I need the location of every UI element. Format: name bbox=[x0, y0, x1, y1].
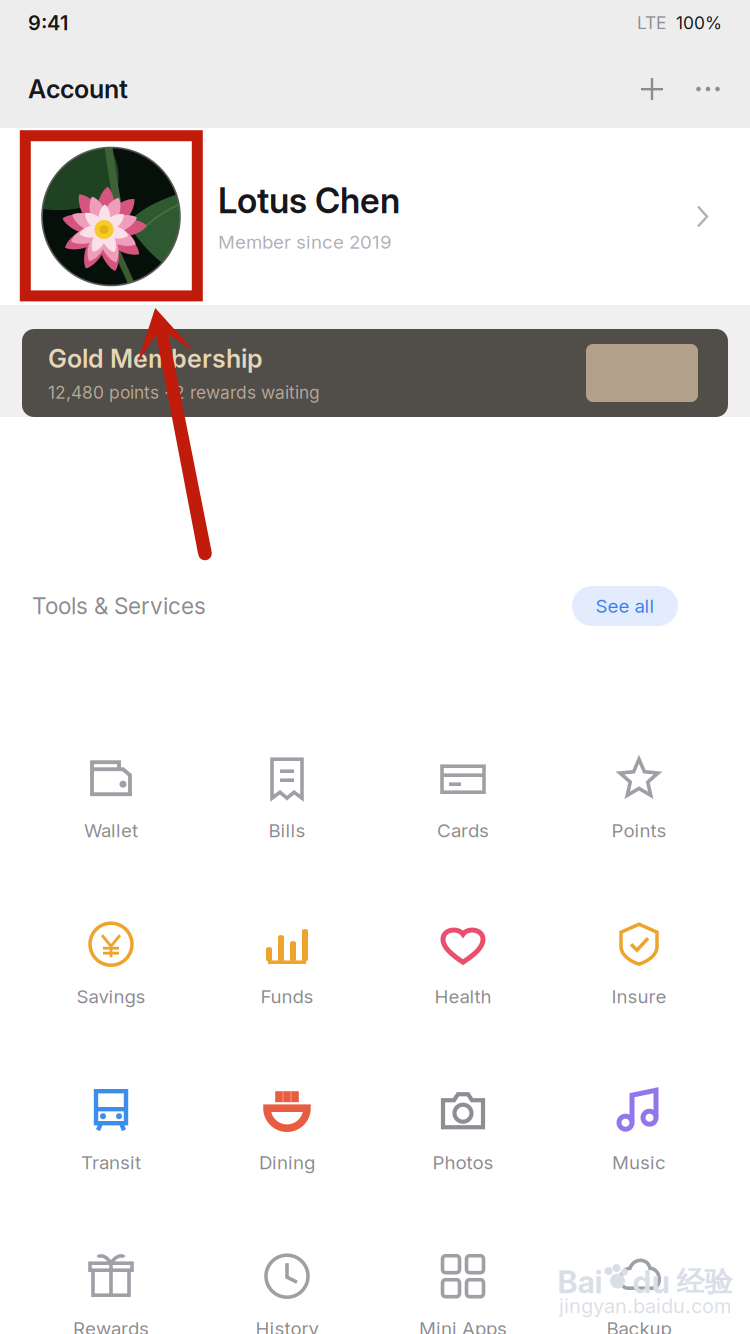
button[interactable]: Bills bbox=[199, 732, 375, 860]
button[interactable]: Rewards bbox=[23, 1230, 199, 1334]
button[interactable]: Dining bbox=[199, 1064, 375, 1192]
button[interactable]: Savings bbox=[23, 898, 199, 1026]
staticText: 经验 bbox=[676, 1264, 732, 1300]
staticText: Cards bbox=[437, 819, 489, 842]
staticText: Savings bbox=[76, 985, 145, 1008]
button[interactable]: Lotus Chen bbox=[0, 128, 750, 305]
staticText: Lotus Chen bbox=[218, 180, 400, 222]
staticText: 12,480 points · 2 rewards waiting bbox=[48, 382, 320, 403]
staticText: Dining bbox=[259, 1151, 315, 1174]
staticText: Bai bbox=[557, 1263, 602, 1300]
button[interactable]: Transit bbox=[23, 1064, 199, 1192]
button[interactable]: Cards bbox=[375, 732, 551, 860]
staticText: 9:41 bbox=[28, 11, 68, 35]
button[interactable]: Points bbox=[551, 732, 727, 860]
staticText: du bbox=[632, 1263, 670, 1300]
staticText: Bills bbox=[268, 819, 305, 842]
staticText: Funds bbox=[260, 985, 313, 1008]
staticText: LTE bbox=[637, 12, 666, 33]
button[interactable]: Backup bbox=[551, 1230, 727, 1334]
staticText: Transit bbox=[81, 1151, 141, 1174]
staticText: History bbox=[255, 1317, 318, 1334]
button[interactable]: Add bbox=[624, 64, 680, 114]
staticText: Points bbox=[611, 819, 666, 842]
button[interactable]: More options bbox=[680, 64, 736, 114]
button[interactable]: Music bbox=[551, 1064, 727, 1192]
button[interactable]: Funds bbox=[199, 898, 375, 1026]
button[interactable]: Mini Apps bbox=[375, 1230, 551, 1334]
button[interactable]: Wallet bbox=[23, 732, 199, 860]
staticText: Member since 2019 bbox=[218, 231, 392, 253]
staticText: Backup bbox=[606, 1317, 671, 1334]
staticText: Health bbox=[434, 985, 491, 1008]
staticText: 100% bbox=[676, 12, 722, 33]
staticText: Music bbox=[612, 1151, 666, 1174]
staticText: Gold Membership bbox=[48, 343, 263, 374]
button[interactable]: Gold Membership bbox=[0, 329, 750, 417]
staticText: Insure bbox=[611, 985, 666, 1008]
staticText: See all bbox=[595, 595, 654, 617]
staticText: Mini Apps bbox=[419, 1317, 507, 1334]
staticText: Rewards bbox=[73, 1317, 149, 1334]
button[interactable]: History bbox=[199, 1230, 375, 1334]
staticText: jingyan.baidu.com bbox=[559, 1294, 731, 1318]
staticText: Wallet bbox=[84, 819, 138, 842]
button[interactable]: Health bbox=[375, 898, 551, 1026]
staticText: Tools & Services bbox=[32, 592, 206, 620]
staticText: Account bbox=[28, 74, 128, 104]
button[interactable]: See all bbox=[572, 586, 678, 626]
staticText: Photos bbox=[432, 1151, 493, 1174]
button[interactable]: Insure bbox=[551, 898, 727, 1026]
button[interactable]: Photos bbox=[375, 1064, 551, 1192]
